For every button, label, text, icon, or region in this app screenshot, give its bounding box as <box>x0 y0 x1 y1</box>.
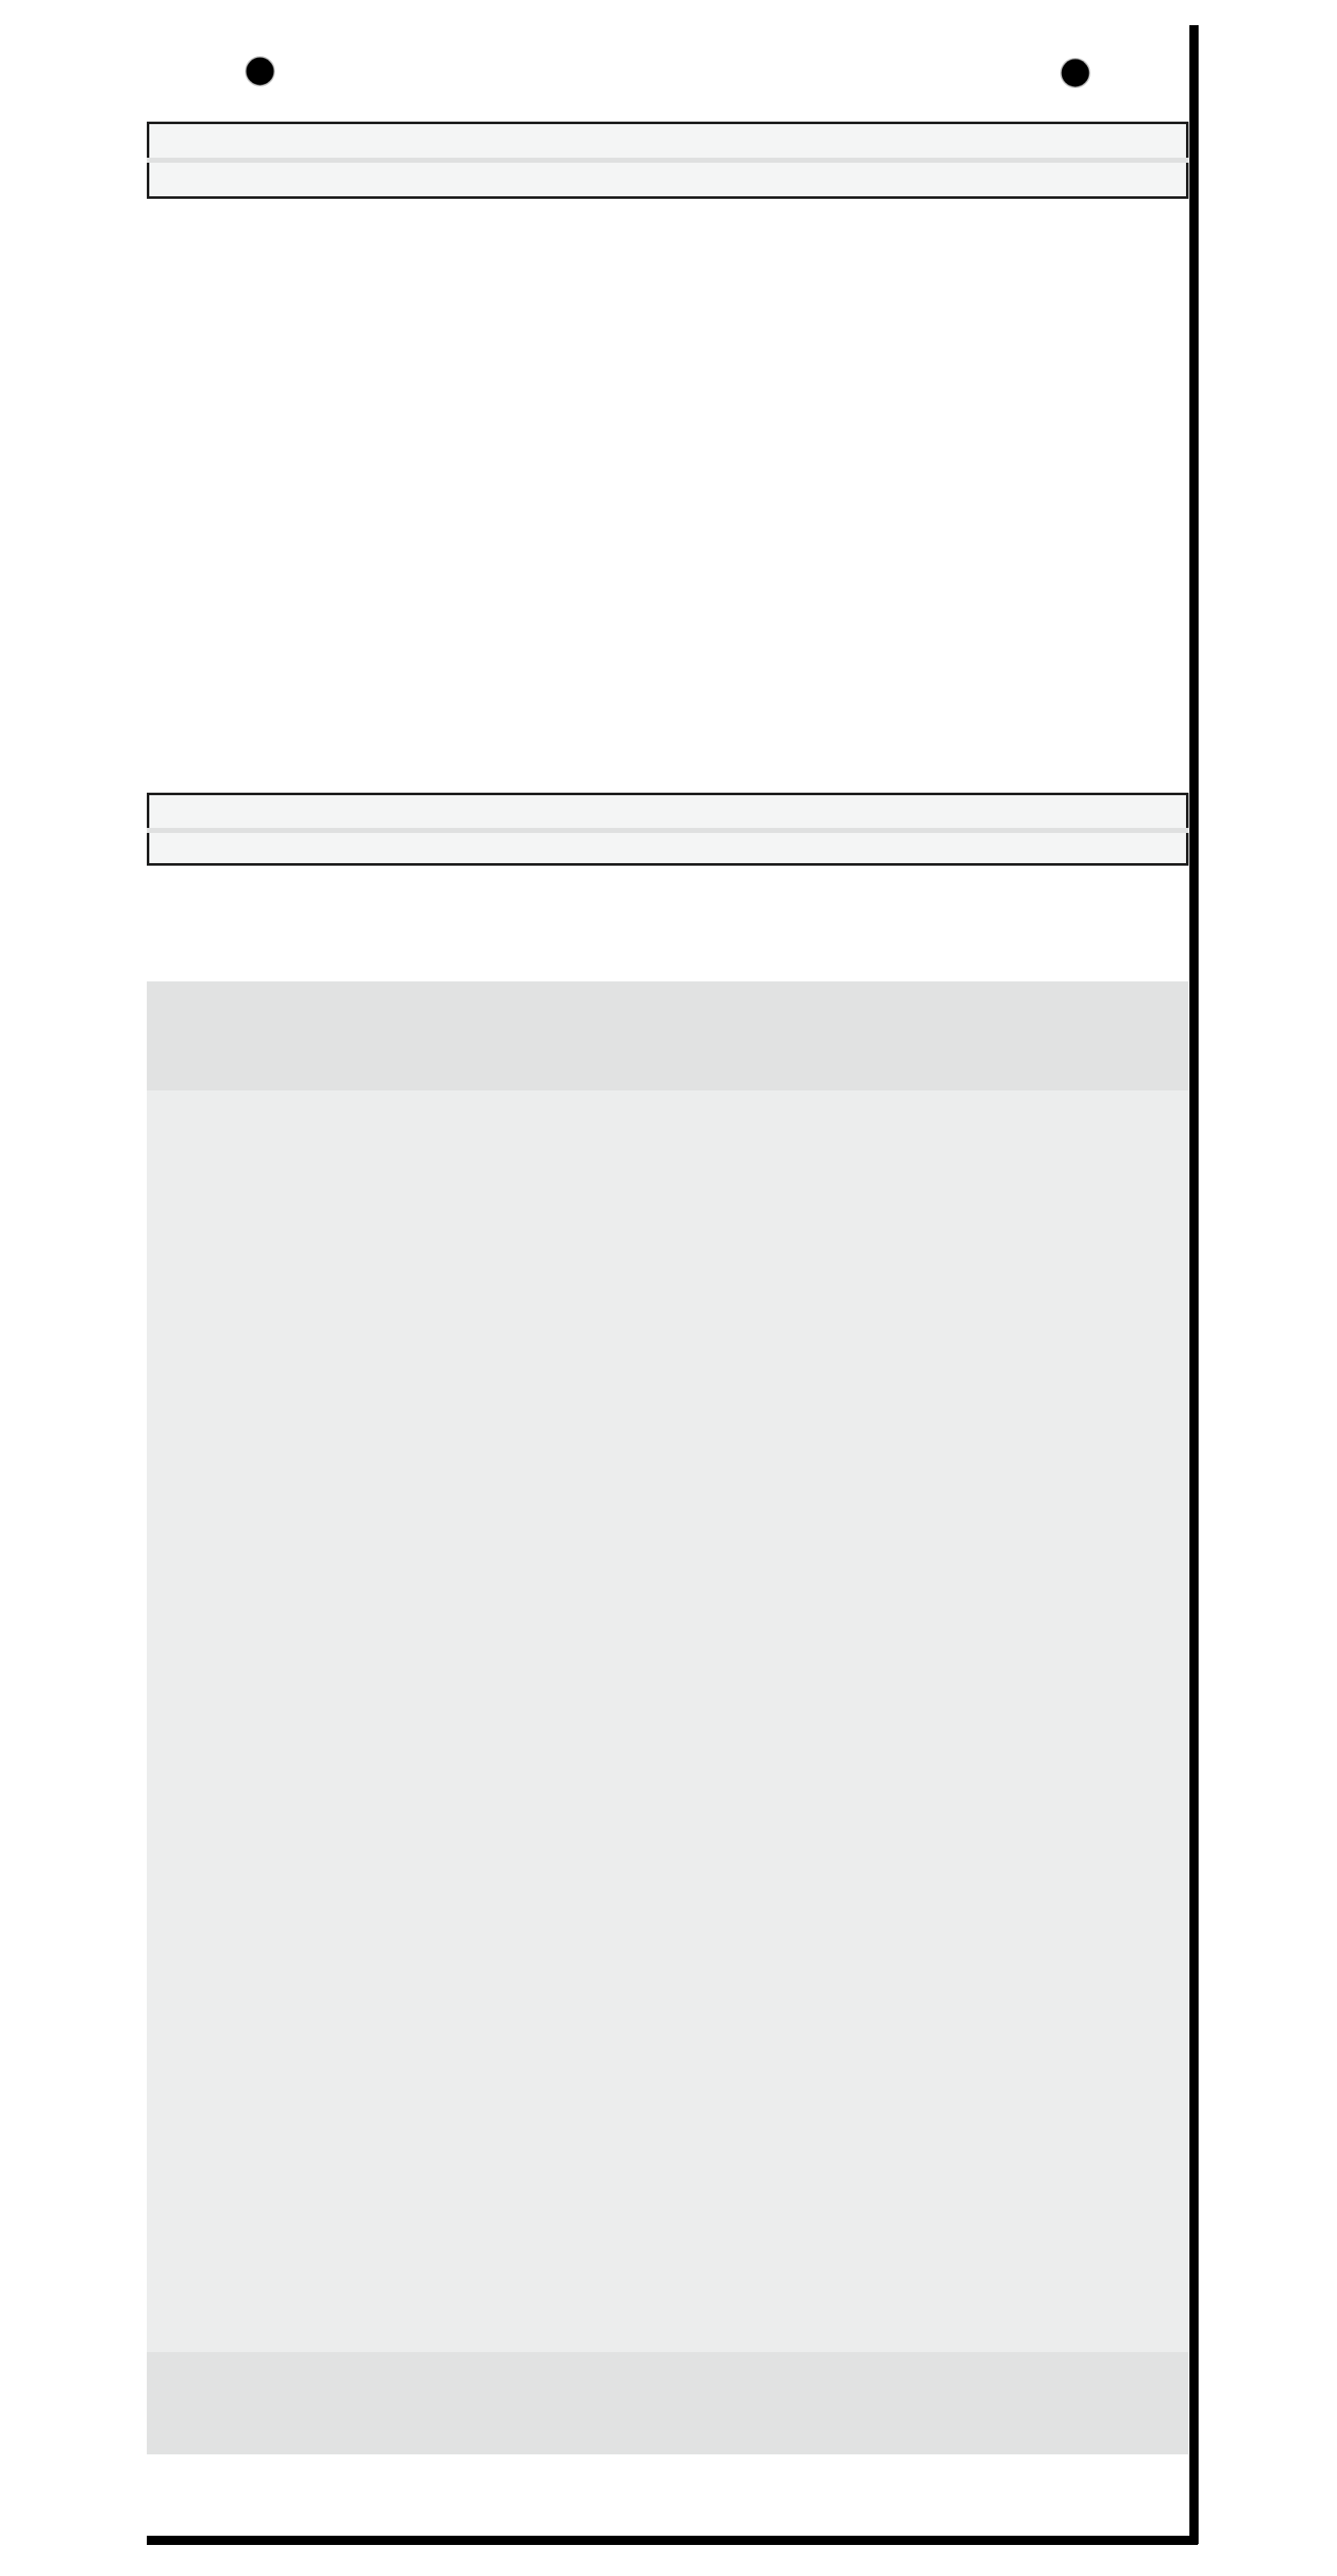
button[interactable]: Section bar <box>147 793 1189 866</box>
button[interactable]: Header bar <box>147 122 1189 199</box>
button[interactable]: Menu <box>245 56 275 86</box>
button[interactable]: More options <box>1060 58 1090 88</box>
